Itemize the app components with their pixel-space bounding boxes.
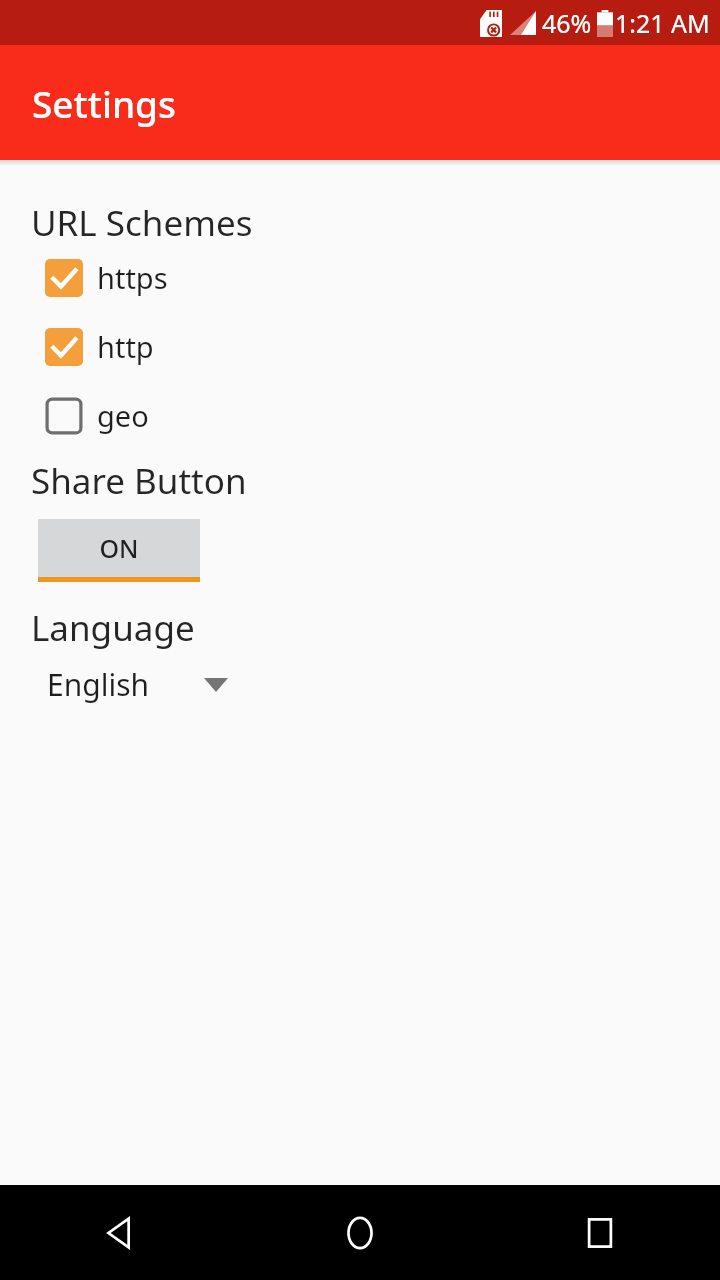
button[interactable]: geo [0,394,720,437]
staticText: geo [97,396,149,435]
staticText: English [47,664,150,705]
button[interactable]: Recent apps [480,1185,720,1280]
staticText: http [97,327,154,366]
button[interactable]: http [0,325,720,368]
staticText: 1:21 AM [615,6,710,40]
other: Select language [204,678,228,692]
button[interactable]: Back [0,1185,240,1280]
staticText: Settings [32,78,177,128]
button[interactable]: English [0,660,290,709]
button[interactable]: Home [240,1185,480,1280]
button[interactable]: https [0,256,720,299]
button[interactable]: ON [38,519,200,582]
staticText: Share Button [31,457,247,505]
staticText: https [97,258,168,297]
staticText: ON [99,531,139,565]
staticText: Language [31,604,195,652]
staticText: 46% [542,6,592,40]
staticText: URL Schemes [31,199,253,247]
